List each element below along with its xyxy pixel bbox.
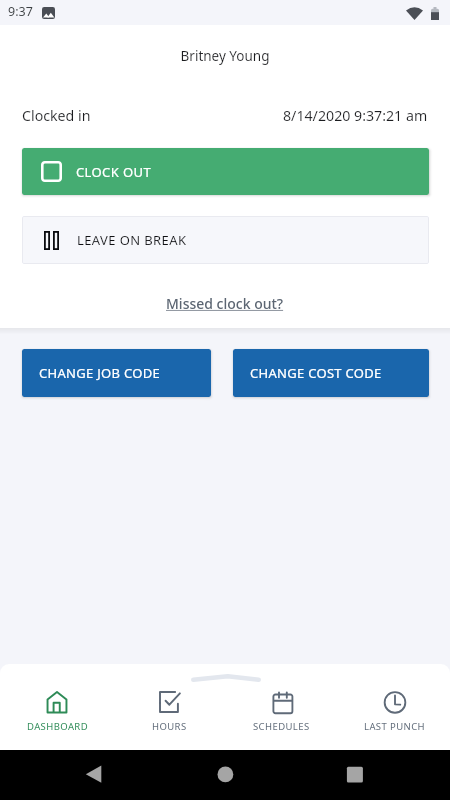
- staticText: CLOCK OUT: [76, 163, 152, 181]
- staticText: Clocked in: [22, 106, 91, 125]
- staticText: DASHBOARD: [27, 720, 88, 733]
- button[interactable]: HOURS: [113, 691, 225, 750]
- staticText: HOURS: [152, 720, 187, 733]
- button[interactable]: Home: [210, 759, 241, 790]
- staticText: 9:37: [8, 3, 33, 20]
- button[interactable]: Missed clock out?: [163, 291, 287, 316]
- staticText: CHANGE JOB CODE: [39, 364, 160, 382]
- staticText: LAST PUNCH: [364, 720, 425, 733]
- staticText: 8/14/2020 9:37:21 am: [283, 106, 428, 125]
- button[interactable]: Back: [79, 759, 110, 790]
- staticText: LEAVE ON BREAK: [77, 231, 187, 249]
- button[interactable]: SCHEDULES: [225, 691, 338, 750]
- button[interactable]: DASHBOARD: [1, 691, 113, 750]
- button[interactable]: LAST PUNCH: [338, 691, 450, 750]
- button[interactable]: Recent apps: [339, 759, 370, 790]
- button[interactable]: CLOCK OUT: [22, 148, 429, 195]
- button[interactable]: CHANGE JOB CODE: [22, 349, 211, 397]
- button[interactable]: CHANGE COST CODE: [233, 349, 429, 397]
- staticText: CHANGE COST CODE: [250, 364, 382, 382]
- staticText: Britney Young: [0, 47, 450, 65]
- staticText: SCHEDULES: [253, 720, 310, 733]
- button[interactable]: LEAVE ON BREAK: [22, 216, 429, 264]
